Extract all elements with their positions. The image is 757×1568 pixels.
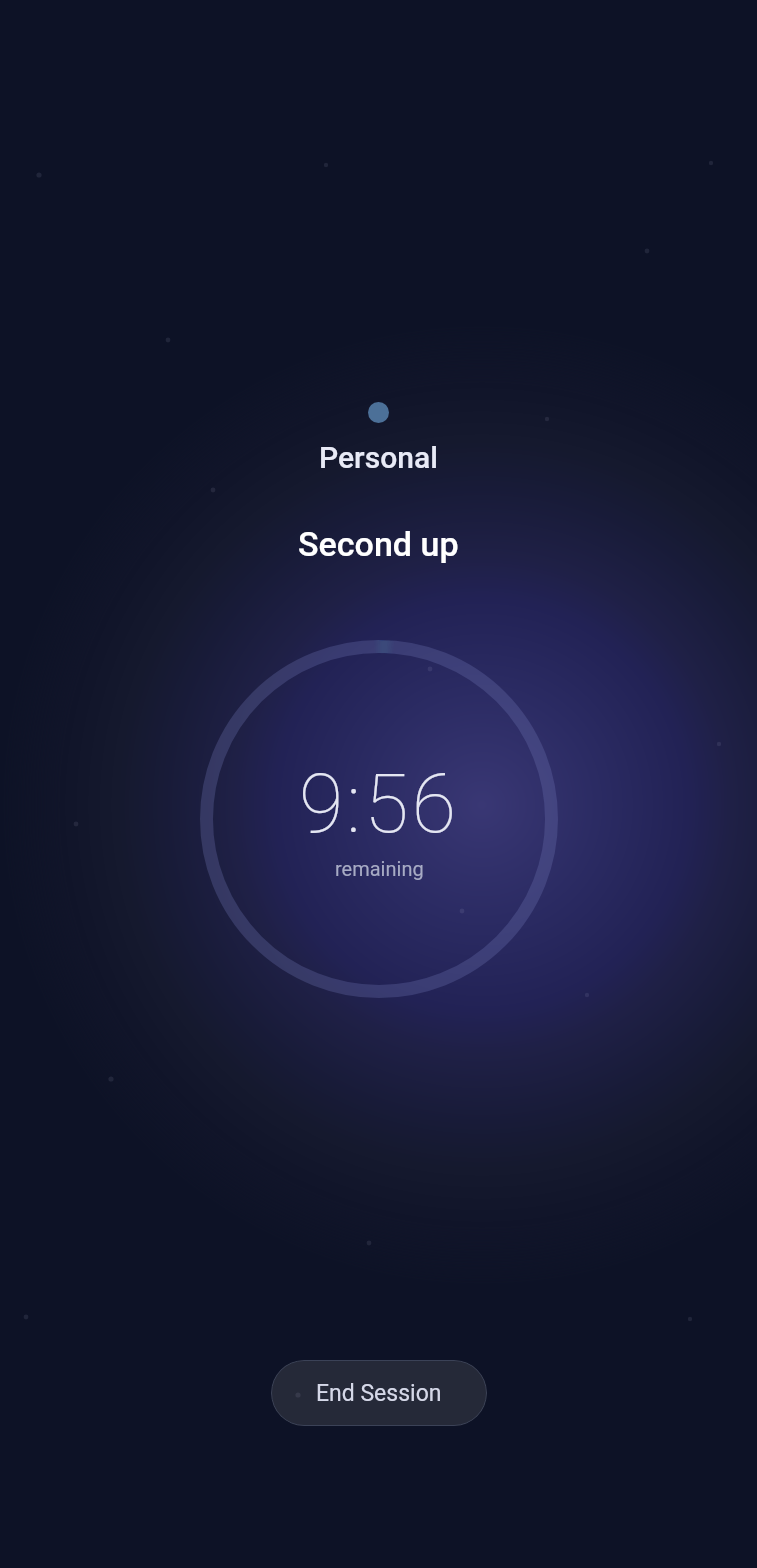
other: Session active	[368, 402, 389, 423]
staticText: Personal	[319, 440, 438, 475]
button[interactable]: End Session	[271, 1360, 487, 1426]
staticText: 9:56	[299, 757, 460, 852]
staticText: Second up	[298, 524, 459, 564]
staticText: End Session	[316, 1380, 442, 1407]
staticText: remaining	[335, 857, 424, 880]
